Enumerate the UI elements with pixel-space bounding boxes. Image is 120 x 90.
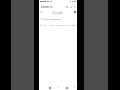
staticText: how to	[43, 5, 53, 9]
button[interactable]: Shop	[62, 23, 69, 27]
button[interactable]: Insert suggestion	[73, 18, 75, 20]
button[interactable]: Clear	[65, 5, 68, 8]
staticText: Video	[56, 24, 62, 27]
staticText: Maps	[70, 24, 76, 27]
button[interactable]: News	[48, 23, 55, 27]
button[interactable]: Video	[55, 23, 62, 27]
button[interactable]: Maps	[69, 23, 76, 27]
button[interactable]: Tabs	[73, 86, 76, 89]
button[interactable]: Home	[65, 86, 68, 89]
button[interactable]: Forward	[57, 86, 60, 89]
staticText: Google	[52, 10, 64, 14]
button[interactable]: Voice search	[69, 5, 72, 8]
staticText: All	[44, 24, 47, 27]
button[interactable]: All	[42, 23, 48, 27]
staticText: how to make bre	[44, 18, 62, 21]
button[interactable]: Back	[40, 5, 43, 8]
staticText: Shop	[63, 24, 69, 27]
button[interactable]: Back	[48, 86, 51, 89]
button[interactable]: Google Lens	[73, 5, 76, 8]
staticText: News	[49, 24, 55, 27]
